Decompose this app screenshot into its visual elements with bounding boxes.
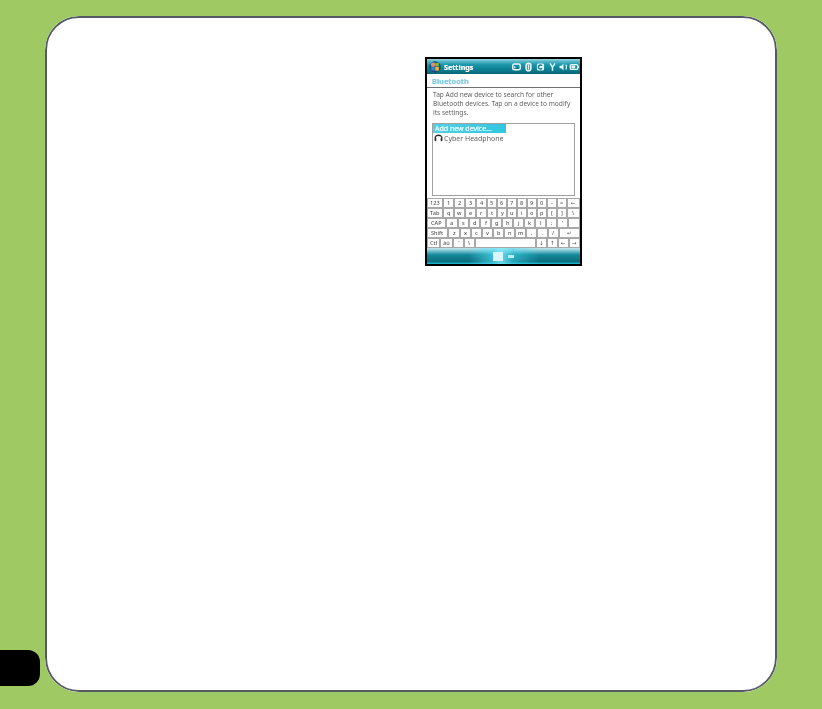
staticText: e xyxy=(469,209,473,217)
button[interactable]: → xyxy=(569,238,580,248)
button[interactable]: Volume xyxy=(559,62,568,72)
button[interactable]: Call history xyxy=(512,62,521,72)
button[interactable]: f xyxy=(480,218,491,228)
button[interactable]: CAP xyxy=(427,218,446,228)
button[interactable]: [ xyxy=(547,208,557,218)
button[interactable]: \ xyxy=(464,238,475,248)
button[interactable]: Signal xyxy=(548,62,557,72)
button[interactable]: 6 xyxy=(497,198,507,208)
staticText: its settings. xyxy=(433,108,469,117)
button[interactable]: Ctl xyxy=(427,238,440,248)
button[interactable]: h xyxy=(502,218,513,228)
button[interactable]: 5 xyxy=(487,198,497,208)
button[interactable]: r xyxy=(476,208,487,218)
button[interactable]: j xyxy=(513,218,524,228)
staticText: 2 xyxy=(458,199,462,207)
staticText: ' xyxy=(562,219,564,227)
staticText: ; xyxy=(551,219,553,227)
button[interactable]: 1 xyxy=(443,198,454,208)
staticText: m xyxy=(518,229,524,237)
button[interactable]: c xyxy=(471,228,482,238)
staticText: Tap Add new device to search for other xyxy=(433,90,554,99)
staticText: ↓ xyxy=(539,240,544,247)
staticText: p xyxy=(540,209,544,217)
button[interactable]: m xyxy=(515,228,526,238)
staticText: k xyxy=(528,219,532,227)
staticText: h xyxy=(506,219,510,227)
button[interactable]: 2 xyxy=(454,198,465,208)
button[interactable]: Shift xyxy=(427,228,448,238)
button[interactable]: Tab xyxy=(427,208,443,218)
button[interactable]: 8 xyxy=(517,198,527,208)
button[interactable]: ' xyxy=(557,218,568,228)
button[interactable]: 3 xyxy=(465,198,476,208)
button[interactable]: ↑ xyxy=(547,238,558,248)
button[interactable]: d xyxy=(469,218,480,228)
button[interactable]: = xyxy=(557,198,567,208)
button[interactable]: o xyxy=(527,208,537,218)
button[interactable]: 0 xyxy=(537,198,547,208)
staticText: / xyxy=(552,229,555,237)
button[interactable]: - xyxy=(547,198,557,208)
button[interactable]: ` xyxy=(453,238,464,248)
staticText: b xyxy=(497,229,501,237)
staticText: 1 xyxy=(447,199,451,207)
staticText: Shift xyxy=(431,229,444,237)
button[interactable] xyxy=(475,238,536,248)
button[interactable]: q xyxy=(443,208,454,218)
button[interactable]: t xyxy=(487,208,497,218)
button[interactable]: ; xyxy=(546,218,557,228)
button[interactable]: ] xyxy=(557,208,567,218)
button[interactable]: l xyxy=(535,218,546,228)
staticText: Tab xyxy=(430,209,440,217)
button[interactable]: n xyxy=(504,228,515,238)
staticText: 3 xyxy=(469,199,473,207)
staticText: ↑ xyxy=(550,240,555,247)
button[interactable] xyxy=(568,218,580,228)
staticText: 8 xyxy=(520,199,524,207)
button[interactable]: p xyxy=(537,208,547,218)
button[interactable]: v xyxy=(482,228,493,238)
staticText: r xyxy=(480,209,483,217)
button[interactable]: 4 xyxy=(476,198,487,208)
button[interactable]: , xyxy=(526,228,537,238)
button[interactable]: s xyxy=(458,218,469,228)
button[interactable]: ↓ xyxy=(536,238,547,248)
button[interactable]: u xyxy=(507,208,517,218)
button[interactable]: w xyxy=(454,208,465,218)
button[interactable]: ← xyxy=(567,198,580,208)
button[interactable]: Cyber Headphone xyxy=(433,133,574,144)
button[interactable]: . xyxy=(537,228,548,238)
button[interactable]: k xyxy=(524,218,535,228)
staticText: 4 xyxy=(480,199,484,207)
button[interactable]: i xyxy=(517,208,527,218)
button[interactable]: a xyxy=(446,218,458,228)
button[interactable]: b xyxy=(493,228,504,238)
button[interactable]: ← xyxy=(558,238,569,248)
staticText: → xyxy=(572,240,577,247)
staticText: q xyxy=(447,209,451,217)
button[interactable]: x xyxy=(460,228,471,238)
button[interactable]: 123 xyxy=(427,198,443,208)
button[interactable]: 9 xyxy=(527,198,537,208)
button[interactable]: z xyxy=(448,228,460,238)
staticText: Cyber Headphone xyxy=(444,134,504,144)
button[interactable]: Sync xyxy=(536,62,545,72)
button[interactable]: g xyxy=(491,218,502,228)
button[interactable]: áü xyxy=(440,238,453,248)
button[interactable]: y xyxy=(497,208,507,218)
button[interactable]: 7 xyxy=(507,198,517,208)
button[interactable]: ↵ xyxy=(559,228,580,238)
button[interactable]: Battery xyxy=(570,62,579,72)
staticText: o xyxy=(530,209,534,217)
button[interactable]: Add new device... xyxy=(433,124,506,133)
button[interactable]: / xyxy=(548,228,559,238)
staticText: v xyxy=(486,229,489,237)
staticText: = xyxy=(560,199,564,207)
button[interactable]: \ xyxy=(567,208,580,218)
staticText: c xyxy=(475,229,478,237)
button[interactable]: Bluetooth xyxy=(524,62,533,72)
staticText: [ xyxy=(551,209,553,217)
button[interactable]: e xyxy=(465,208,476,218)
